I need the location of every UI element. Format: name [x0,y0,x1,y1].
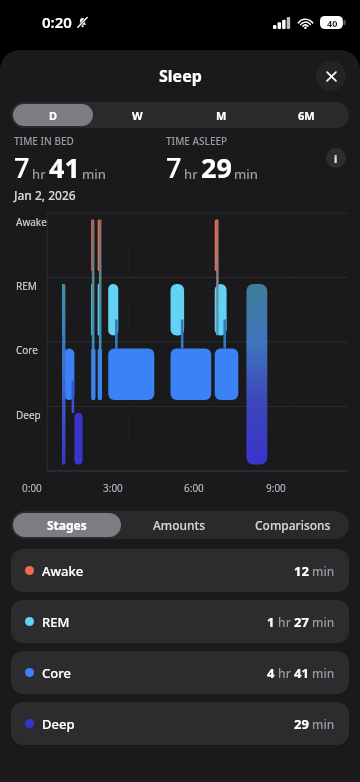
button[interactable]: Core [11,651,349,694]
staticText: 27 [294,613,309,631]
staticText: W [132,108,143,123]
staticText: TIME IN BED [14,134,74,148]
staticText: 12 [294,562,309,580]
staticText: 41 [294,664,309,682]
staticText: D [49,108,58,123]
button[interactable]: 6M [266,104,347,126]
button[interactable]: M [181,104,262,126]
button[interactable]: Amounts [125,513,234,537]
staticText: min [309,614,335,630]
button[interactable]: Close [316,61,346,91]
staticText: min [234,165,258,183]
staticText: Awake [16,215,47,229]
staticText: hr [32,165,46,183]
staticText: REM [42,613,70,631]
button[interactable]: D [13,104,93,126]
staticText: min [309,665,335,681]
staticText: 0:20 [42,12,72,32]
staticText: hr [184,165,198,183]
button[interactable]: Comparisons [238,513,347,537]
staticText: 1 [267,613,275,631]
staticText: min [309,563,335,579]
staticText: M [216,108,227,123]
staticText: REM [16,279,37,293]
button[interactable]: W [97,104,177,126]
staticText: 41 [49,149,80,186]
staticText: Core [42,664,71,682]
staticText: Awake [42,562,84,580]
staticText: 6M [298,108,315,123]
staticText: 3:00 [103,481,123,495]
button[interactable]: Stages [13,513,121,537]
staticText: Stages [47,517,87,533]
staticText: 40 [327,17,338,29]
staticText: Deep [16,408,41,422]
staticText: Deep [42,715,75,733]
staticText: TIME ASLEEP [166,134,228,148]
staticText: 4 [267,664,275,682]
staticText: min [309,716,335,732]
staticText: 7 [14,149,30,186]
staticText: i [334,151,338,166]
staticText: hr [275,614,294,630]
staticText: 6:00 [184,481,204,495]
button[interactable]: Information [326,148,346,168]
staticText: 29 [294,715,309,733]
staticText: 9:00 [266,481,286,495]
button[interactable]: Deep [11,702,349,745]
button[interactable]: REM [11,600,349,643]
staticText: Comparisons [255,517,331,533]
staticText: Jan 2, 2026 [14,187,76,203]
staticText: Amounts [153,517,206,533]
staticText: 29 [201,149,232,186]
staticText: 0:00 [22,481,42,495]
staticText: min [82,165,106,183]
button[interactable]: Awake [11,549,349,592]
staticText: hr [275,665,294,681]
staticText: Core [16,343,38,357]
staticText: 7 [166,149,182,186]
staticText: Sleep [159,65,202,87]
